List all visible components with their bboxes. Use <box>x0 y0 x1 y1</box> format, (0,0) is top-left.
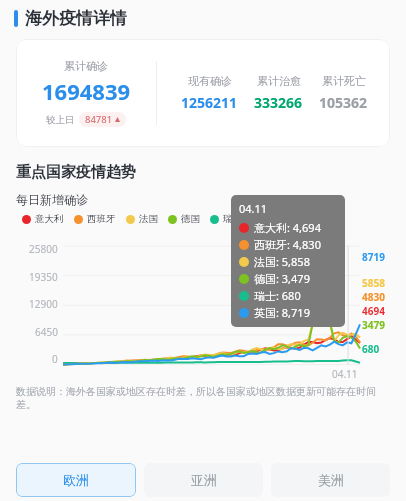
staticText: 亚洲 <box>191 472 217 488</box>
staticText: 意大利 <box>35 213 64 225</box>
staticText: 25800 <box>29 242 58 256</box>
staticText: 8719 <box>362 250 385 264</box>
staticText: 美洲 <box>318 472 344 488</box>
staticText: 84781 <box>85 113 113 126</box>
staticText: 4694 <box>362 304 385 318</box>
staticText: 5858 <box>362 276 385 290</box>
staticText: 333266 <box>254 93 303 112</box>
staticText: 19350 <box>29 270 58 284</box>
button[interactable]: 累计确诊 <box>16 39 390 147</box>
staticText: 瑞士 <box>223 213 242 225</box>
staticText: 重点国家疫情趋势 <box>16 163 136 182</box>
staticText: 680 <box>362 342 380 356</box>
staticText: 6450 <box>35 325 58 339</box>
staticText: 累计治愈 <box>257 74 301 88</box>
staticText: 现有确诊 <box>188 74 232 88</box>
staticText: 法国 <box>139 213 158 225</box>
staticText: 西班牙: 4,830 <box>254 237 321 252</box>
staticText: 英国: 8,719 <box>254 305 310 320</box>
staticText: 12900 <box>29 297 58 311</box>
staticText: 1694839 <box>42 76 131 106</box>
button[interactable]: 亚洲 <box>144 463 263 497</box>
staticText: 105362 <box>319 93 368 112</box>
staticText: 累计死亡 <box>322 74 366 88</box>
staticText: 数据说明：海外各国家或地区存在时差，所以各国家或地区数据更新可能存在时间差。 <box>16 385 390 411</box>
staticText: 意大利: 4,694 <box>254 220 321 235</box>
staticText: 瑞士: 680 <box>254 288 301 303</box>
staticText: 04.11 <box>332 367 358 381</box>
staticText: 德国 <box>181 213 200 225</box>
staticText: 海外疫情详情 <box>25 8 127 29</box>
staticText: 4830 <box>362 290 385 304</box>
staticText: 0 <box>52 352 58 366</box>
staticText: 德国: 3,479 <box>254 271 310 286</box>
staticText: 3479 <box>362 318 385 332</box>
staticText: 英国 <box>265 213 284 225</box>
staticText: 法国: 5,858 <box>254 254 310 269</box>
button[interactable]: 欧洲 <box>16 463 136 497</box>
staticText: 欧洲 <box>63 472 89 488</box>
staticText: 西班牙 <box>87 213 116 225</box>
staticText: 04.11 <box>239 201 268 216</box>
staticText: 每日新增确诊 <box>16 192 88 207</box>
staticText: 累计确诊 <box>64 59 108 73</box>
button[interactable]: 美洲 <box>271 463 390 497</box>
staticText: 较上日 <box>46 114 75 126</box>
staticText: 1256211 <box>181 93 238 112</box>
